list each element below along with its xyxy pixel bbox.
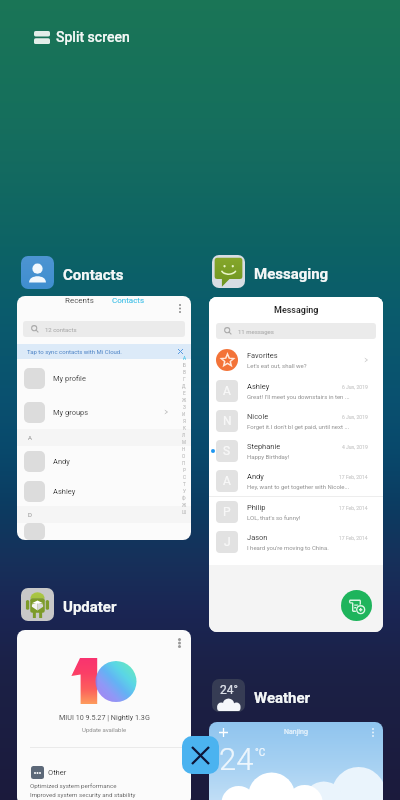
staticText: Ashley (247, 382, 270, 391)
staticText: Ф (182, 496, 186, 501)
staticText: 24° (220, 683, 238, 697)
staticText: My profile (53, 374, 86, 383)
staticText: О (182, 454, 186, 459)
staticText: Nicole (247, 412, 269, 421)
staticText: A (223, 474, 231, 488)
staticText: MIUI 10 9.5.27 | Nightly 1.3G (59, 713, 150, 721)
staticText: Contacts (63, 266, 124, 284)
staticText: D (28, 511, 32, 518)
button[interactable]: Ashley (17, 476, 191, 506)
staticText: Other (48, 768, 67, 777)
staticText: Let's eat out, shall we? (247, 362, 307, 369)
button[interactable]: Recents (65, 296, 94, 305)
staticText: Stephanie (247, 442, 281, 451)
staticText: Ashley (53, 487, 76, 496)
staticText: A (28, 434, 32, 441)
staticText: И (182, 412, 186, 417)
button[interactable]: Recents (17, 296, 191, 540)
staticText: Д (182, 384, 186, 389)
button[interactable]: MIUI 10 9.5.27 | Nightly 1.3G (17, 630, 191, 800)
staticText: 6 Jun, 2019 (342, 384, 368, 390)
staticText: A (183, 356, 186, 361)
staticText: S (223, 444, 231, 458)
staticText: 6 Jun, 2019 (342, 414, 368, 420)
staticText: 17 Feb, 2014 (339, 505, 368, 511)
button[interactable]: N (209, 406, 383, 436)
staticText: Happy Birthday! (247, 453, 290, 460)
staticText: LOL, that's so funny! (247, 514, 301, 521)
button[interactable]: 12 contacts (23, 321, 185, 337)
staticText: Tap to sync contacts with Mi Cloud. (27, 348, 122, 355)
staticText: Н (182, 447, 186, 452)
staticText: Nanjing (284, 728, 308, 736)
staticText: Philip (247, 503, 266, 512)
button[interactable]: Favorites (209, 343, 383, 376)
staticText: 17 Feb, 2014 (339, 474, 368, 480)
staticText: Messaging (274, 305, 319, 316)
staticText: Hey, want to get together with Nicole... (247, 483, 350, 490)
staticText: 17 Feb, 2014 (339, 535, 368, 541)
staticText: М (182, 440, 187, 445)
staticText: С (183, 475, 186, 480)
staticText: Е (183, 391, 186, 396)
button[interactable]: Close all (182, 736, 219, 774)
staticText: Andy (53, 457, 70, 466)
button[interactable]: Messaging (209, 297, 383, 632)
staticText: У (183, 489, 186, 494)
staticText: В (183, 370, 186, 375)
other: Dismiss (178, 349, 183, 354)
button[interactable]: 24° (212, 679, 311, 712)
button[interactable]: S (209, 436, 383, 466)
staticText: Г (183, 377, 186, 382)
button[interactable]: Contacts (112, 296, 145, 305)
staticText: My groups (53, 408, 89, 417)
staticText: Jason (247, 533, 268, 542)
staticText: Forget it.I don't bl get paid, until nex… (247, 423, 350, 430)
button[interactable]: 11 messages (216, 323, 376, 339)
staticText: Ш (182, 510, 187, 515)
staticText: Updater (63, 598, 117, 616)
button[interactable]: My groups (17, 395, 191, 429)
button[interactable] (17, 523, 191, 540)
staticText: Messaging (254, 265, 329, 283)
staticText: Я (183, 419, 186, 424)
other: More options (179, 304, 181, 313)
button[interactable]: Updater (21, 588, 117, 621)
staticText: A (223, 384, 231, 398)
staticText: З (183, 405, 186, 410)
button[interactable]: A (209, 466, 383, 496)
staticText: П (182, 461, 186, 466)
staticText: Great! I'll meet you downstairs in ten .… (247, 393, 350, 400)
staticText: Improved system security and stability (30, 791, 136, 798)
staticText: Update available (82, 726, 127, 733)
staticText: Split screen (56, 29, 130, 45)
button[interactable]: New message (341, 590, 372, 621)
button[interactable]: J (209, 527, 383, 557)
staticText: °C (255, 747, 266, 759)
staticText: Andy (247, 472, 264, 481)
staticText: Weather (254, 689, 311, 707)
button[interactable]: Contacts (21, 256, 124, 289)
staticText: Л (182, 433, 186, 438)
staticText: Optimized system performance (30, 782, 117, 789)
staticText: J (224, 535, 231, 549)
staticText: I heard you're moving to China. (247, 544, 329, 551)
staticText: К (183, 426, 186, 431)
button[interactable]: Andy (17, 446, 191, 476)
button[interactable]: A (209, 376, 383, 406)
staticText: Ж (182, 503, 187, 508)
staticText: Т (183, 482, 186, 487)
button[interactable]: My profile (17, 361, 191, 395)
staticText: 24 (219, 741, 254, 777)
staticText: 4 Jun, 2019 (342, 444, 368, 450)
staticText: Р (183, 468, 186, 473)
button[interactable]: P (209, 497, 383, 527)
staticText: N (223, 414, 232, 428)
button[interactable]: Split screen (30, 25, 134, 49)
button[interactable]: Nanjing (209, 722, 383, 800)
button[interactable]: Messaging (212, 255, 329, 288)
staticText: Favorites (247, 351, 278, 360)
staticText: 11 messages (238, 328, 274, 335)
button[interactable]: Tap to sync contacts with Mi Cloud. (17, 344, 191, 359)
staticText: 12 contacts (45, 326, 77, 333)
